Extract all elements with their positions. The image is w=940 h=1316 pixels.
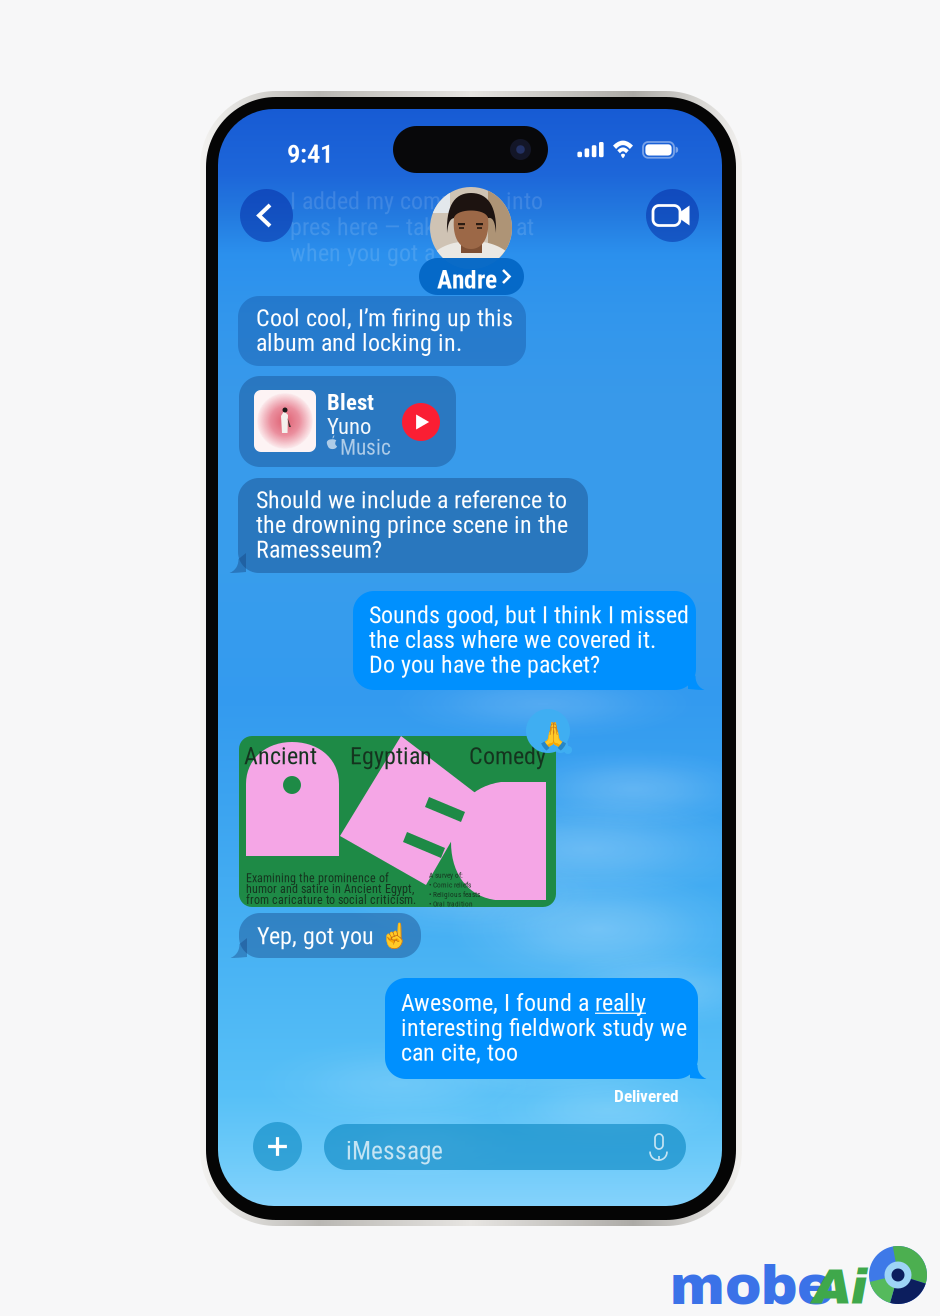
staticText: can cite, too xyxy=(401,1038,518,1066)
staticText: Blest xyxy=(327,389,374,416)
button[interactable]: Cool cool, I’m firing up this xyxy=(238,296,526,366)
staticText: from caricature to social criticism. xyxy=(246,893,416,907)
staticText: Ai xyxy=(812,1259,867,1314)
button[interactable]: Blest xyxy=(239,376,456,467)
button[interactable]: Back xyxy=(240,189,293,242)
staticText: mobe xyxy=(670,1256,833,1315)
staticText: Examining the prominence of xyxy=(246,871,389,885)
staticText: album and locking in. xyxy=(256,329,462,357)
staticText: Awesome, I found a really xyxy=(401,989,646,1016)
staticText: Music xyxy=(340,435,391,460)
staticText: Delivered xyxy=(614,1086,679,1106)
staticText: Comedy xyxy=(469,742,546,770)
staticText: Ancient xyxy=(244,742,317,770)
staticText: Yuno xyxy=(327,413,371,440)
staticText: Andre xyxy=(437,265,497,295)
staticText: Should we include a reference to xyxy=(256,486,567,514)
staticText: when you got a min xyxy=(290,239,477,267)
button[interactable]: Awesome, I found a really xyxy=(385,978,698,1079)
staticText: iMessage xyxy=(346,1136,443,1166)
staticText: Egyptian xyxy=(350,742,432,770)
staticText: humor and satire in Ancient Egypt, xyxy=(246,882,414,896)
staticText: • Comic reliefs xyxy=(429,881,471,889)
button[interactable]: FaceTime video call xyxy=(646,189,699,242)
staticText: Sounds good, but I think I missed xyxy=(369,601,689,629)
staticText: interesting fieldwork study we xyxy=(401,1014,687,1042)
button[interactable]: Andre xyxy=(419,258,524,295)
staticText: Ramesseum? xyxy=(256,535,382,563)
button[interactable]: Yep, got you ☝️ xyxy=(239,913,421,958)
staticText: 9:41 xyxy=(287,138,333,169)
staticText: the class where we covered it. xyxy=(369,626,656,654)
staticText: I added my comments into xyxy=(290,187,543,215)
button[interactable]: Sounds good, but I think I missed xyxy=(353,591,696,690)
staticText: Cool cool, I’m firing up this xyxy=(256,304,513,332)
staticText: • Oral tradition xyxy=(429,900,473,908)
button[interactable]: Add attachment xyxy=(253,1122,302,1171)
button[interactable]: Should we include a reference to xyxy=(238,478,588,573)
staticText: Do you have the packet? xyxy=(369,650,600,678)
button[interactable]: Ancient xyxy=(239,736,556,907)
staticText: the drowning prince scene in the xyxy=(256,511,568,539)
staticText: • Religious feasts xyxy=(429,890,480,899)
staticText: A survey of: xyxy=(429,871,463,880)
staticText: pres here — take a look at xyxy=(290,213,534,241)
staticText: 🙏 xyxy=(537,720,570,751)
staticText: Yep, got you ☝️ xyxy=(257,922,410,950)
button[interactable]: iMessage xyxy=(324,1124,686,1170)
